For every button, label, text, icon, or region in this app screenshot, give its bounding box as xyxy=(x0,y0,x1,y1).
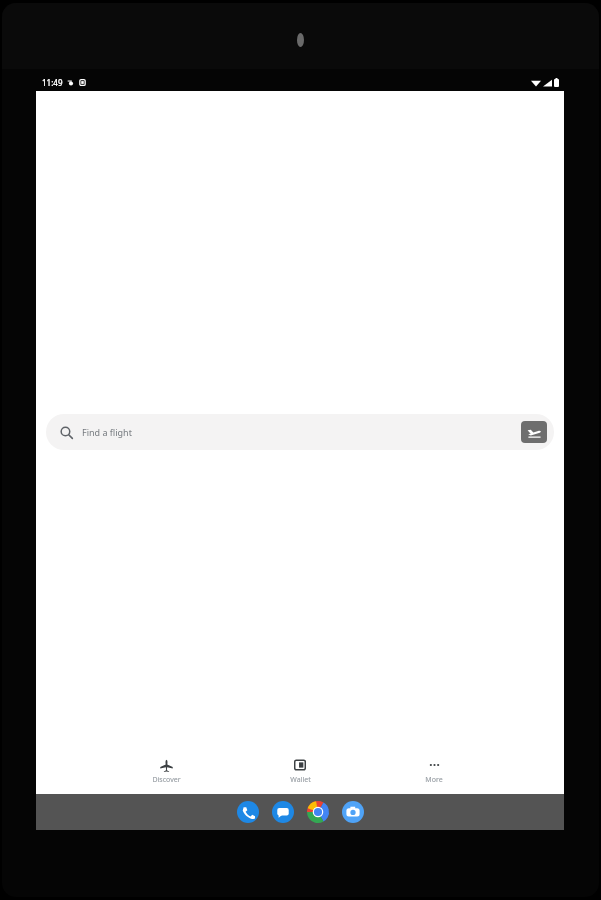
button[interactable]: Wallet xyxy=(233,755,367,789)
button[interactable]: Chrome xyxy=(307,801,329,823)
staticText: Find a flight xyxy=(82,426,132,438)
staticText: Wallet xyxy=(290,775,311,785)
staticText: 11:49 xyxy=(42,77,63,88)
button[interactable]: Discover xyxy=(99,755,233,789)
button[interactable]: Find a flight xyxy=(46,414,554,450)
staticText: More xyxy=(425,775,443,785)
button[interactable]: Camera xyxy=(342,801,364,823)
staticText: Discover xyxy=(152,775,181,785)
button[interactable]: Phone xyxy=(237,801,259,823)
button[interactable]: Flight search xyxy=(521,421,547,443)
button[interactable]: More xyxy=(367,755,501,789)
button[interactable]: Messages xyxy=(272,801,294,823)
